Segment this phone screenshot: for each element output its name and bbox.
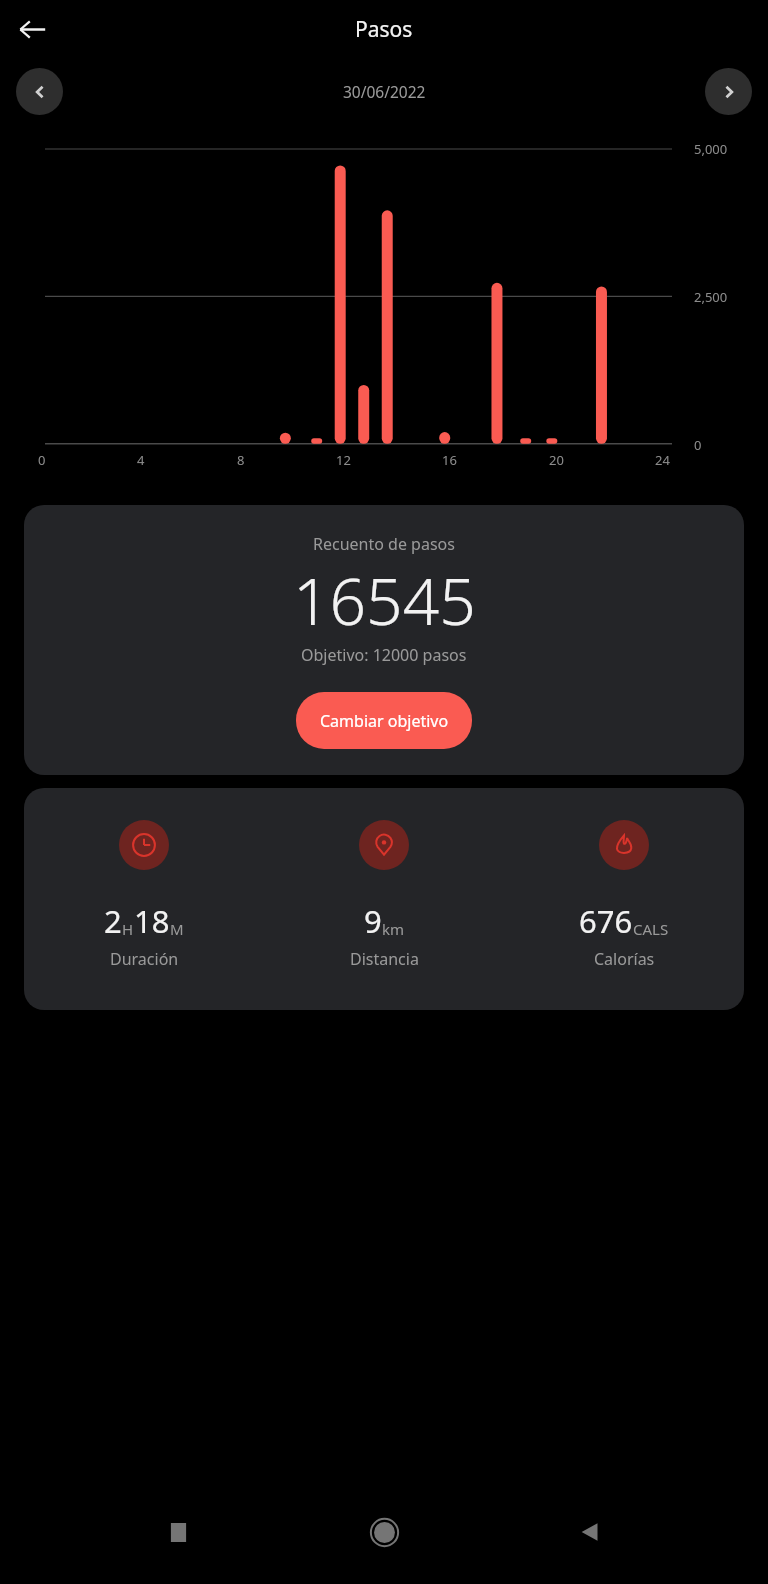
staticText: 30/06/2022: [343, 81, 426, 102]
staticText: 5,000: [694, 140, 728, 158]
staticText: CALS: [633, 919, 669, 939]
staticText: 0: [38, 451, 46, 469]
button[interactable]: Previous day: [16, 68, 63, 115]
staticText: 8: [237, 451, 245, 469]
other: Distancia: [359, 820, 409, 870]
staticText: 4: [137, 451, 145, 469]
staticText: H: [122, 919, 134, 939]
staticText: km: [382, 919, 405, 939]
staticText: Duración: [110, 948, 179, 970]
staticText: Pasos: [355, 15, 413, 44]
button[interactable]: Cambiar objetivo: [296, 692, 472, 749]
staticText: 2,500: [694, 288, 728, 306]
staticText: 9: [364, 900, 382, 942]
button[interactable]: Back: [8, 5, 56, 53]
button[interactable]: Home: [356, 1504, 412, 1560]
button[interactable]: Duración: [24, 820, 264, 970]
staticText: 12: [336, 451, 351, 469]
staticText: Recuento de pasos: [313, 533, 455, 555]
staticText: 24: [655, 451, 670, 469]
button[interactable]: Recuento de pasos: [24, 505, 744, 775]
other: Duración: [119, 820, 169, 870]
staticText: 2: [104, 900, 122, 942]
staticText: 18: [134, 900, 170, 942]
staticText: 16545: [293, 557, 476, 644]
button[interactable]: Next day: [705, 68, 752, 115]
staticText: Distancia: [350, 948, 419, 970]
button[interactable]: Recents: [152, 1506, 204, 1558]
button[interactable]: Distancia: [264, 820, 504, 970]
staticText: Cambiar objetivo: [320, 710, 449, 732]
staticText: Calorías: [594, 948, 655, 970]
button[interactable]: Back: [564, 1506, 616, 1558]
staticText: M: [170, 919, 184, 939]
staticText: Objetivo: 12000 pasos: [301, 644, 467, 666]
button[interactable]: Calorías: [504, 820, 744, 970]
staticText: 16: [442, 451, 457, 469]
staticText: 0: [694, 436, 702, 454]
staticText: 20: [549, 451, 564, 469]
staticText: 676: [579, 900, 633, 942]
other: Calorías: [599, 820, 649, 870]
